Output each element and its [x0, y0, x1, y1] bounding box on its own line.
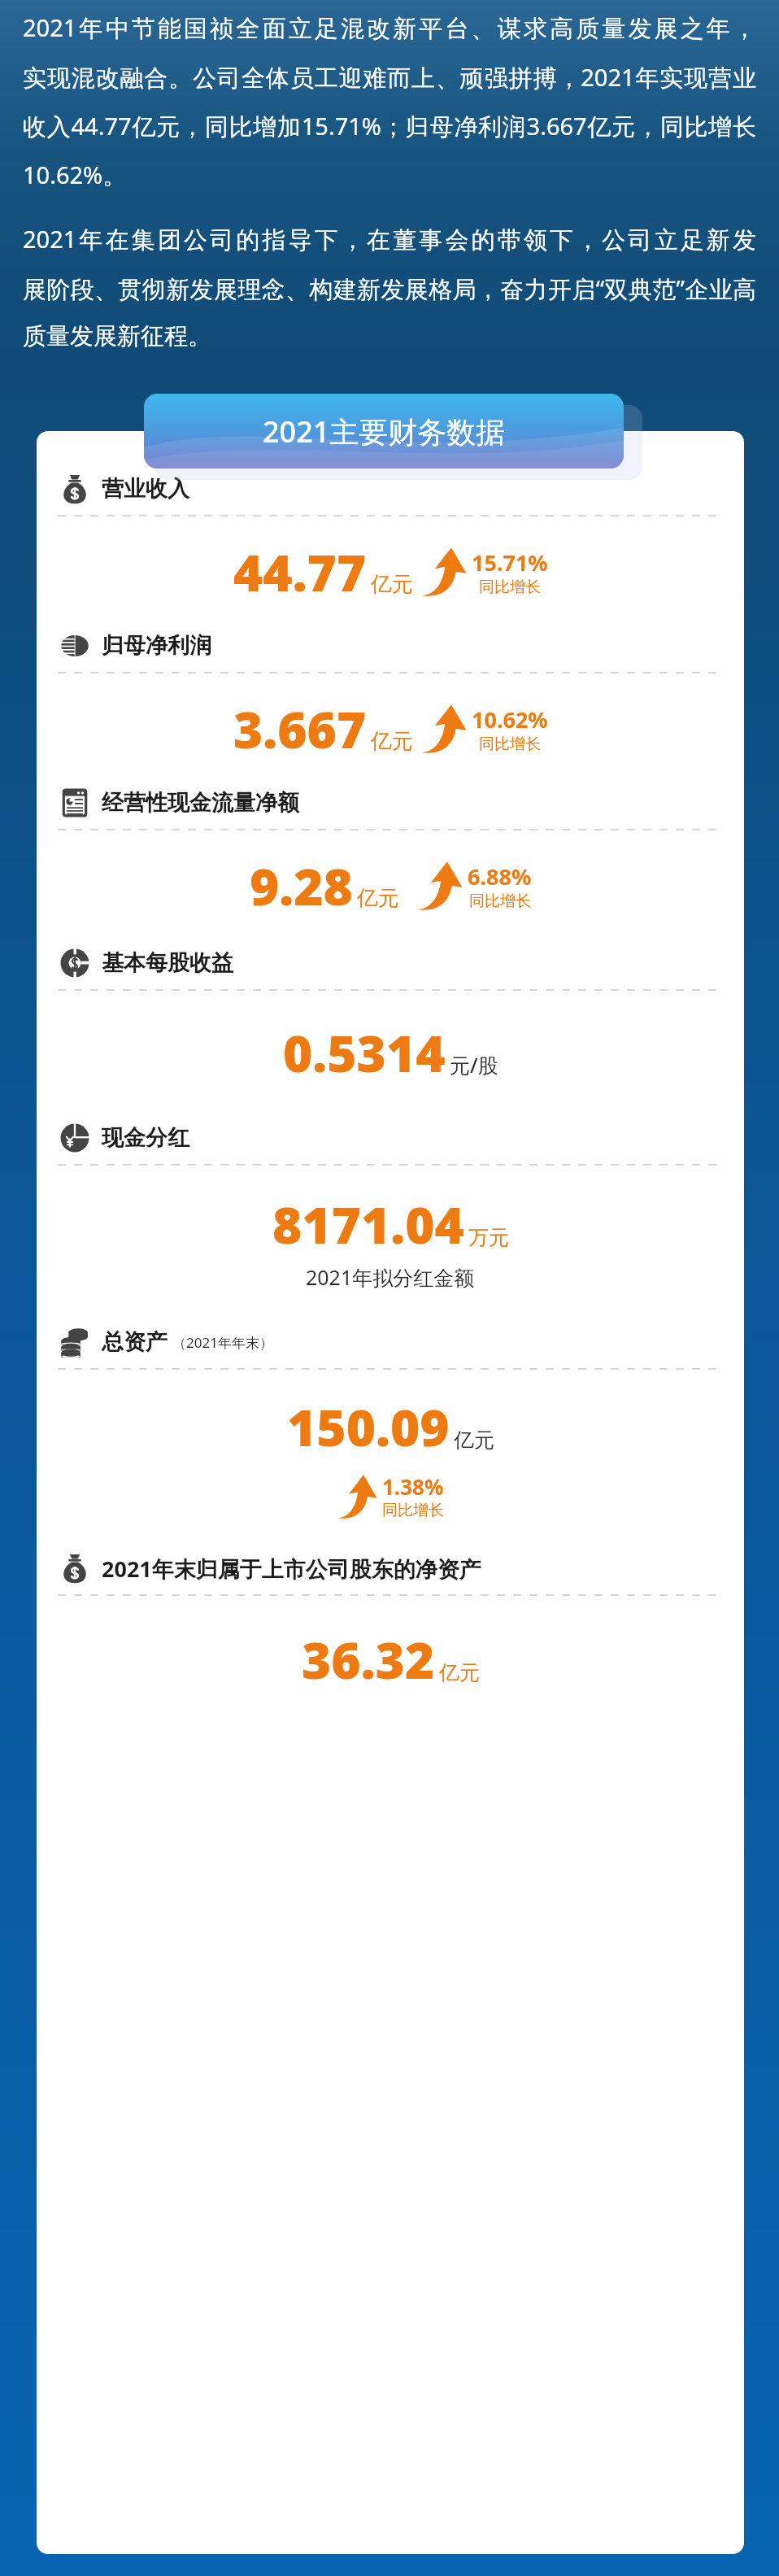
other: 营业收入 — [59, 473, 90, 504]
other: 经营性现金流量净额 — [59, 787, 90, 818]
staticText: 经营性现金流量净额 — [102, 789, 299, 817]
button[interactable]: 归母净利润 — [37, 630, 744, 661]
staticText: 亿元 — [454, 1427, 494, 1453]
staticText: 1.38% — [382, 1472, 444, 1501]
staticText: 总资产 — [102, 1328, 168, 1356]
staticText: 亿元 — [439, 1660, 480, 1685]
staticText: 亿元 — [371, 728, 413, 755]
staticText: 2021主要财务数据 — [263, 412, 506, 451]
button[interactable]: 基本每股收益 — [37, 948, 744, 979]
button[interactable]: 经营性现金流量净额 — [37, 787, 744, 818]
other: 现金分红 — [59, 1122, 90, 1153]
button[interactable]: 营业收入 — [37, 473, 744, 504]
staticText: 36.32 — [302, 1625, 435, 1693]
staticText: 2021年拟分红金额 — [306, 1263, 475, 1291]
staticText: 8171.04 — [272, 1190, 464, 1258]
staticText: 营业收入 — [102, 475, 189, 503]
staticText: 150.09 — [287, 1393, 450, 1461]
other: 基本每股收益 — [59, 948, 90, 979]
staticText: 3.667 — [233, 695, 367, 763]
staticText: 同比增长 — [382, 1501, 444, 1520]
staticText: 2021年末归属于上市公司股东的净资产 — [102, 1554, 481, 1584]
staticText: 同比增长 — [469, 891, 531, 911]
other: 归母净利润 — [59, 630, 90, 661]
staticText: 2021年在集团公司的指导下，在董事会的带领下，公司立足新发展阶段、贯彻新发展理… — [23, 223, 756, 351]
other: 总资产 — [59, 1327, 90, 1358]
staticText: 44.77 — [233, 538, 367, 606]
button[interactable]: 2021主要财务数据 — [144, 394, 624, 469]
button[interactable]: 2021年末归属于上市公司股东的净资产 — [37, 1553, 744, 1584]
staticText: 6.88% — [468, 861, 532, 891]
staticText: 同比增长 — [479, 578, 541, 597]
staticText: （2021年年末） — [172, 1333, 273, 1352]
staticText: 现金分红 — [102, 1124, 189, 1152]
staticText: 元/股 — [450, 1051, 498, 1079]
staticText: 15.71% — [472, 547, 548, 578]
staticText: 2021年中节能国祯全面立足混改新平台、谋求高质量发展之年，实现混改融合。公司全… — [23, 11, 756, 190]
staticText: 9.28 — [250, 852, 353, 920]
staticText: 基本每股收益 — [102, 949, 233, 977]
button[interactable]: 总资产 — [37, 1327, 744, 1358]
button[interactable]: 现金分红 — [37, 1122, 744, 1153]
other: 2021年末归属于上市公司股东的净资产 — [59, 1553, 90, 1584]
staticText: 0.5314 — [283, 1018, 446, 1087]
staticText: 10.62% — [472, 704, 548, 734]
staticText: 亿元 — [357, 885, 399, 912]
staticText: 万元 — [468, 1225, 509, 1250]
staticText: 亿元 — [371, 571, 413, 598]
staticText: 同比增长 — [479, 734, 541, 754]
staticText: 归母净利润 — [102, 632, 211, 660]
